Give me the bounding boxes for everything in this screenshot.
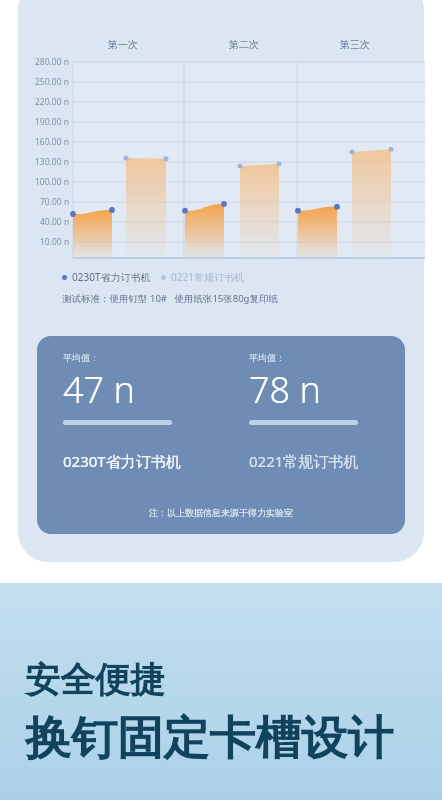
staticText: 平均值： [249,352,285,363]
staticText: 40.00 n [40,216,70,228]
staticText: 70.00 n [40,196,70,208]
staticText: 160.00 n [35,136,70,148]
staticText: 平均值： [63,352,99,363]
staticText: 第二次 [229,38,259,51]
staticText: 换钉固定卡槽设计 [25,710,393,768]
staticText: 280.00 n [35,56,70,68]
staticText: 190.00 n [35,116,70,128]
staticText: 测试标准：使用钉型 10# 使用纸张15张80g复印纸 [62,292,278,305]
staticText: 0230T省力订书机 [63,451,181,471]
staticText: 78 n [249,365,321,414]
staticText: 注：以上数据信息来源于得力实验室 [149,507,293,518]
staticText: 47 n [63,365,135,414]
staticText: 第一次 [108,38,138,51]
button[interactable]: 平均值： [37,336,405,534]
staticText: 130.00 n [35,156,70,168]
staticText: 0221常规订书机 [249,451,359,471]
staticText: 250.00 n [35,76,70,88]
staticText: 0230T省力订书机 [72,270,151,284]
staticText: 10.00 n [40,236,70,248]
staticText: 第三次 [340,38,370,51]
staticText: 0221常规订书机 [171,270,244,284]
staticText: 220.00 n [35,96,70,108]
button[interactable]: 0230T省力订书机 [62,270,244,284]
staticText: 安全便捷 [25,658,165,702]
staticText: 100.00 n [35,176,70,188]
